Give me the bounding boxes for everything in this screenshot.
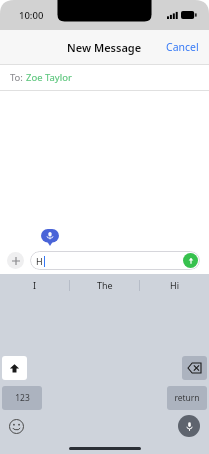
button[interactable]: Hi [140, 274, 209, 296]
staticText: H [36, 255, 43, 267]
button[interactable]: Cancel [162, 36, 203, 58]
staticText: 10:00 [19, 9, 44, 22]
button[interactable]: return [167, 386, 207, 410]
button[interactable]: Backspace [182, 356, 207, 380]
button[interactable]: Send [183, 253, 198, 268]
staticText: The [97, 279, 113, 291]
staticText: To: [10, 71, 26, 84]
button[interactable]: Add attachment [7, 252, 24, 269]
staticText: I [33, 279, 37, 291]
button[interactable]: H [30, 251, 200, 270]
button[interactable]: Emoji [9, 419, 24, 434]
staticText: return [174, 392, 200, 404]
staticText: Hi [170, 279, 179, 291]
staticText: Cancel [166, 40, 199, 54]
button[interactable]: Shift [2, 356, 27, 380]
button[interactable]: I [0, 274, 69, 296]
button[interactable]: Dictate [178, 415, 200, 437]
button[interactable]: The [70, 274, 139, 296]
staticText: 123 [15, 392, 30, 404]
staticText: Zoe Taylor [26, 71, 72, 84]
button[interactable]: 123 [2, 386, 42, 410]
button[interactable]: To: [0, 65, 209, 90]
button[interactable]: Dictation [41, 229, 59, 246]
staticText: New Message [67, 40, 142, 55]
